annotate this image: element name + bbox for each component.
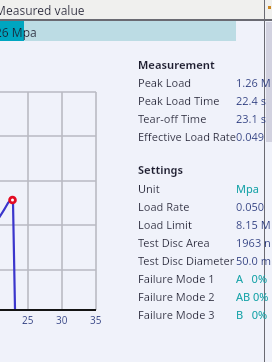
staticText: Measurement bbox=[138, 57, 215, 72]
button[interactable]: Peak Load bbox=[134, 73, 272, 90]
staticText: 23.1 s bbox=[236, 111, 266, 126]
button[interactable]: Failure Mode 1 bbox=[134, 269, 272, 286]
button[interactable]: Test Disc Diameter bbox=[134, 251, 272, 268]
staticText: A 0% bbox=[236, 271, 268, 286]
staticText: 1.26 M bbox=[236, 75, 271, 90]
staticText: 22.4 s bbox=[236, 93, 266, 108]
button[interactable]: Unit bbox=[134, 179, 272, 196]
staticText: 26 Mpa bbox=[0, 24, 37, 40]
staticText: 35 bbox=[90, 313, 102, 327]
staticText: Load Limit bbox=[138, 217, 192, 232]
staticText: 1963 n bbox=[236, 235, 271, 250]
staticText: AB 0% bbox=[236, 289, 269, 304]
staticText: B 0% bbox=[236, 307, 268, 322]
button[interactable] bbox=[266, 22, 272, 142]
staticText: Test Disc Area bbox=[138, 235, 210, 250]
button[interactable]: Measured value bbox=[0, 0, 272, 19]
button[interactable]: Test Disc Area bbox=[134, 233, 272, 250]
staticText: Measured value bbox=[0, 2, 85, 18]
staticText: Failure Mode 2 bbox=[138, 289, 215, 304]
staticText: Effective Load Rate bbox=[138, 129, 237, 144]
staticText: Test Disc Diameter bbox=[138, 253, 235, 268]
staticText: Load Rate bbox=[138, 199, 190, 214]
staticText: 50.0 m bbox=[236, 253, 271, 268]
staticText: 30 bbox=[56, 313, 68, 327]
staticText: 0.050 bbox=[236, 199, 265, 214]
staticText: 25 bbox=[22, 313, 34, 327]
staticText: Failure Mode 3 bbox=[138, 307, 215, 322]
staticText: Settings bbox=[138, 162, 184, 177]
button[interactable]: Effective Load Rate bbox=[134, 127, 272, 144]
button[interactable]: Failure Mode 3 bbox=[134, 305, 272, 322]
button[interactable]: Failure Mode 2 bbox=[134, 287, 272, 304]
staticText: Peak Load bbox=[138, 75, 192, 90]
staticText: 8.15 M bbox=[236, 217, 271, 232]
staticText: Tear-off Time bbox=[138, 111, 207, 126]
staticText: Mpa bbox=[236, 181, 259, 196]
staticText: Peak Load Time bbox=[138, 93, 220, 108]
staticText: Unit bbox=[138, 181, 160, 196]
button[interactable]: Peak Load Time bbox=[134, 91, 272, 108]
button[interactable] bbox=[0, 21, 272, 41]
button[interactable]: Tear-off Time bbox=[134, 109, 272, 126]
button[interactable]: Load Rate bbox=[134, 197, 272, 214]
button[interactable]: Load Limit bbox=[134, 215, 272, 232]
staticText: 0.049 bbox=[236, 129, 265, 144]
staticText: Failure Mode 1 bbox=[138, 271, 215, 286]
